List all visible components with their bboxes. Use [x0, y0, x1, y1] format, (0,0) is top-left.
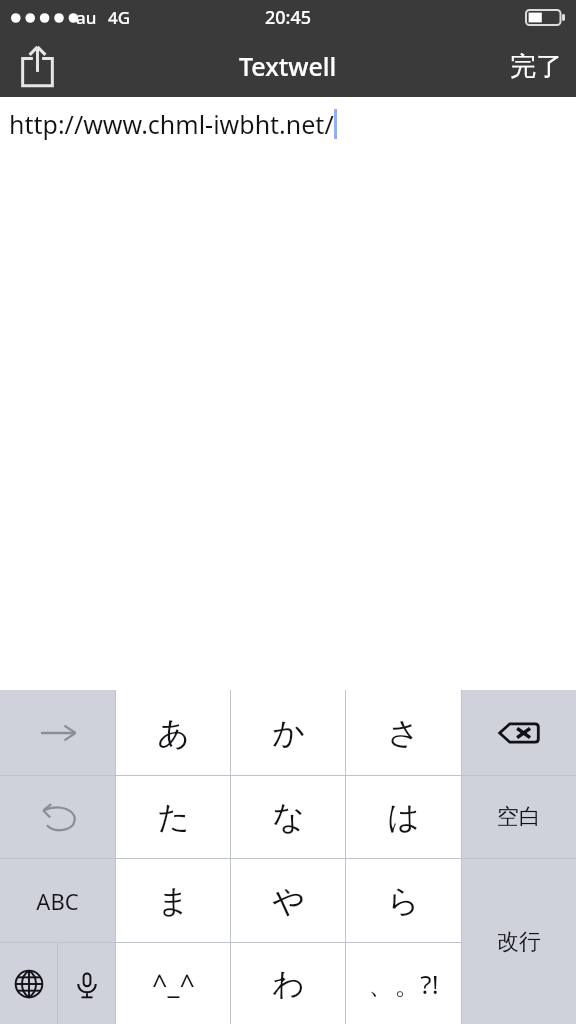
- button[interactable]: Dictation: [58, 943, 115, 1024]
- staticText: ^_^: [152, 965, 195, 1002]
- button[interactable]: や: [231, 859, 345, 942]
- button[interactable]: ABC: [0, 859, 115, 942]
- button[interactable]: あ: [116, 690, 230, 775]
- button[interactable]: Share: [6, 36, 68, 96]
- staticText: た: [157, 797, 190, 837]
- staticText: は: [387, 797, 420, 837]
- button[interactable]: ま: [116, 859, 230, 942]
- staticText: 、。?!: [368, 966, 439, 1002]
- staticText: ら: [387, 881, 420, 921]
- staticText: か: [272, 713, 305, 753]
- button[interactable]: Next candidate: [0, 690, 115, 775]
- button[interactable]: Backspace: [462, 690, 576, 775]
- button[interactable]: 、。?!: [346, 943, 461, 1024]
- button[interactable]: Undo: [0, 776, 115, 858]
- button[interactable]: さ: [346, 690, 461, 775]
- staticText: わ: [272, 964, 305, 1004]
- staticText: な: [272, 797, 305, 837]
- button[interactable]: ^_^: [116, 943, 230, 1024]
- button[interactable]: ら: [346, 859, 461, 942]
- staticText: 20:45: [265, 5, 312, 30]
- button[interactable]: 空白: [462, 776, 576, 858]
- button[interactable]: 完了: [496, 36, 576, 96]
- staticText: http://www.chml-iwbht.net/: [9, 107, 334, 141]
- button[interactable]: 改行: [462, 859, 576, 1024]
- button[interactable]: た: [116, 776, 230, 858]
- button[interactable]: Switch keyboard: [0, 943, 57, 1024]
- staticText: 完了: [510, 50, 562, 83]
- button[interactable]: わ: [231, 943, 345, 1024]
- staticText: 4G: [108, 6, 131, 29]
- staticText: au: [76, 6, 97, 29]
- staticText: 改行: [497, 928, 541, 956]
- staticText: 空白: [497, 803, 541, 831]
- staticText: や: [272, 881, 305, 921]
- staticText: ABC: [36, 886, 79, 916]
- button[interactable]: な: [231, 776, 345, 858]
- staticText: ま: [157, 881, 190, 921]
- button[interactable]: は: [346, 776, 461, 858]
- staticText: あ: [157, 713, 190, 753]
- staticText: さ: [387, 713, 420, 753]
- staticText: Textwell: [239, 49, 337, 83]
- button[interactable]: か: [231, 690, 345, 775]
